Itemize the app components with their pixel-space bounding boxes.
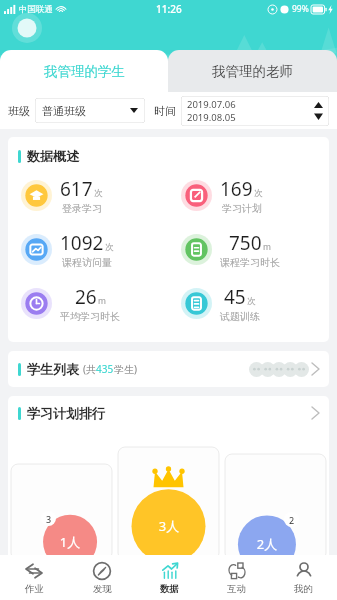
staticText: 169	[220, 176, 253, 202]
staticText: (共	[83, 362, 96, 376]
staticText: 2019.07.06	[187, 98, 236, 111]
button[interactable]: 学生列表	[8, 351, 329, 387]
staticText: 学习计划排行	[27, 405, 105, 421]
staticText: 发现	[93, 583, 112, 595]
staticText: 次	[105, 242, 114, 253]
staticText: 次	[247, 296, 256, 307]
staticText: 11:26	[156, 2, 182, 16]
button[interactable]: 我的	[270, 555, 337, 600]
staticText: 26	[75, 284, 97, 310]
staticText: 时间	[154, 104, 176, 118]
staticText: 课程学习时长	[220, 256, 280, 269]
staticText: 数据	[160, 583, 179, 595]
staticText: 班级	[8, 104, 30, 118]
button[interactable]: 2019.07.06	[181, 96, 329, 126]
staticText: 435	[96, 362, 114, 376]
staticText: 我的	[294, 583, 313, 595]
staticText: 2	[289, 514, 295, 526]
button[interactable]: 互动	[203, 555, 270, 600]
button[interactable]: 750	[168, 222, 329, 276]
staticText: 数据概述	[27, 148, 79, 164]
button[interactable]: 学习计划排行	[8, 396, 329, 430]
staticText: 1人	[57, 533, 83, 551]
staticText: 中国联通	[19, 4, 53, 15]
staticText: 作业	[25, 583, 44, 595]
staticText: 3	[46, 513, 52, 525]
staticText: 99%	[292, 3, 309, 15]
staticText: 2019.08.05	[187, 111, 236, 124]
staticText: 试题训练	[220, 310, 260, 323]
button[interactable]: 我管理的老师	[168, 50, 337, 92]
button[interactable]: 作业	[0, 555, 68, 600]
staticText: 互动	[227, 583, 246, 595]
button[interactable]: 617	[8, 168, 168, 222]
staticText: m	[98, 295, 106, 307]
staticText: 750	[229, 230, 262, 256]
staticText: m	[263, 241, 271, 253]
staticText: 2人	[254, 535, 280, 553]
staticText: 学习计划	[222, 202, 262, 215]
button[interactable]: 26	[8, 276, 168, 330]
staticText: 我管理的老师	[212, 63, 293, 80]
staticText: 617	[60, 176, 93, 202]
button[interactable]: 45	[168, 276, 329, 330]
staticText: 1092	[60, 230, 104, 256]
staticText: 次	[94, 188, 103, 199]
staticText: 登录学习	[62, 202, 102, 215]
staticText: 平均学习时长	[60, 310, 120, 323]
staticText: 普通班级	[42, 104, 86, 118]
button[interactable]: 1092	[8, 222, 168, 276]
button[interactable]: 我管理的学生	[0, 50, 168, 92]
staticText: 次	[254, 188, 263, 199]
button[interactable]: 普通班级	[35, 98, 145, 123]
staticText: 课程访问量	[62, 256, 112, 269]
staticText: 我管理的学生	[44, 63, 125, 80]
button[interactable]: 169	[168, 168, 329, 222]
staticText: 45	[224, 284, 246, 310]
button[interactable]: 发现	[68, 555, 136, 600]
staticText: 3人	[156, 517, 182, 535]
button[interactable]: 数据	[136, 555, 203, 600]
staticText: 学生)	[114, 362, 137, 376]
staticText: 学生列表	[27, 361, 79, 377]
